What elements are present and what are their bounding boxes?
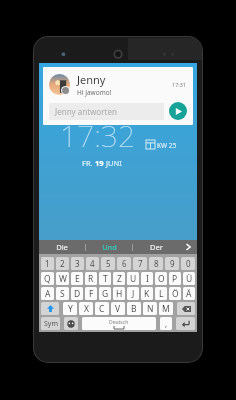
button[interactable]: 4 (86, 257, 99, 270)
staticText: 2 (60, 258, 65, 269)
staticText: P (172, 273, 178, 285)
button[interactable]: G (99, 287, 111, 300)
staticText: 9 (170, 258, 175, 269)
staticText: U (130, 273, 137, 285)
button[interactable]: Y (63, 302, 77, 315)
staticText: Hi Jawomo! (77, 88, 112, 97)
button[interactable]: S (56, 287, 69, 300)
staticText: Und (102, 242, 117, 252)
button[interactable]: Z (113, 272, 125, 285)
button[interactable]: C (95, 302, 109, 315)
staticText: L (159, 288, 164, 300)
staticText: Y (68, 303, 73, 315)
button[interactable]: D (71, 287, 83, 300)
button[interactable]: Jenny antworten (49, 103, 164, 120)
staticText: 17:32 (60, 115, 135, 156)
staticText: G (102, 288, 109, 300)
button[interactable]: 2 (56, 257, 69, 270)
staticText: FR. (82, 158, 95, 168)
staticText: 8 (154, 258, 159, 269)
staticText: T (103, 273, 108, 285)
button[interactable]: 7 (133, 257, 147, 270)
button[interactable]: 8 (149, 257, 163, 270)
staticText: Q (44, 273, 51, 285)
staticText: H (116, 288, 123, 300)
button[interactable]: Und (86, 240, 132, 254)
button[interactable]: 3 (71, 257, 84, 270)
staticText: D (74, 288, 81, 300)
button[interactable]: Sym (41, 317, 60, 330)
staticText: I (146, 273, 149, 285)
button[interactable]: F (85, 287, 97, 300)
button[interactable]: M (159, 302, 173, 315)
button[interactable]: W (56, 272, 69, 285)
button[interactable]: 1 (41, 257, 54, 270)
staticText: J (132, 288, 135, 300)
staticText: 7 (138, 258, 143, 269)
staticText: O (158, 273, 165, 285)
button[interactable]: , (160, 317, 172, 330)
staticText: Sym (44, 319, 58, 329)
staticText: Deutsch (109, 319, 129, 326)
button[interactable]: Die (39, 240, 85, 254)
staticText: R (88, 273, 94, 285)
staticText: V (115, 303, 121, 315)
button[interactable]: 9 (165, 257, 179, 270)
button[interactable]: V (111, 302, 125, 315)
button[interactable]: K (141, 287, 153, 300)
staticText: Ä (186, 288, 192, 300)
button[interactable]: U (127, 272, 139, 285)
staticText: Der (150, 242, 163, 252)
staticText: X (84, 303, 89, 315)
button[interactable]: Mehr Vorschläge (179, 240, 197, 254)
button[interactable]: Jenny (43, 67, 193, 125)
button[interactable]: Der (133, 240, 179, 254)
staticText: 6 (122, 258, 127, 269)
staticText: F (89, 288, 94, 300)
button[interactable]: Ü (183, 272, 195, 285)
staticText: 1 (45, 258, 50, 269)
staticText: W (59, 273, 67, 285)
button[interactable]: N (143, 302, 157, 315)
button[interactable]: L (155, 287, 167, 300)
button[interactable]: 6 (117, 257, 131, 270)
staticText: M (162, 303, 170, 315)
button[interactable]: Ä (183, 287, 195, 300)
button[interactable]: O (155, 272, 167, 285)
button[interactable]: X (79, 302, 93, 315)
button[interactable]: A (41, 287, 54, 300)
button[interactable]: Löschen (177, 302, 195, 315)
button[interactable]: Ö (169, 287, 181, 300)
staticText: 5 (106, 258, 111, 269)
staticText: S (60, 288, 65, 300)
staticText: 3 (75, 258, 80, 269)
staticText: Ö (172, 288, 179, 300)
staticText: E (75, 273, 80, 285)
staticText: A (45, 288, 51, 300)
staticText: C (99, 303, 105, 315)
button[interactable]: E (71, 272, 83, 285)
button[interactable]: I (141, 272, 153, 285)
button[interactable]: B (127, 302, 141, 315)
button[interactable]: Eingabe (176, 317, 195, 330)
staticText: 4 (90, 258, 95, 269)
button[interactable]: R (85, 272, 97, 285)
button[interactable]: Senden (169, 102, 187, 120)
button[interactable]: Deutsch (82, 317, 156, 330)
button[interactable]: H (113, 287, 125, 300)
staticText: Jenny (77, 72, 106, 87)
button[interactable]: Emoji (64, 317, 78, 330)
staticText: Z (117, 273, 122, 285)
button[interactable]: T (99, 272, 111, 285)
button[interactable]: 5 (101, 257, 115, 270)
staticText: 19 (95, 158, 104, 168)
staticText: Ü (186, 273, 193, 285)
staticText: Jenny antworten (55, 106, 117, 117)
staticText: 0 (186, 258, 191, 269)
button[interactable]: P (169, 272, 181, 285)
button[interactable] (41, 302, 59, 315)
button[interactable]: 0 (181, 257, 195, 270)
button[interactable]: Q (41, 272, 54, 285)
staticText: 17:31 (172, 81, 187, 88)
button[interactable]: J (127, 287, 139, 300)
